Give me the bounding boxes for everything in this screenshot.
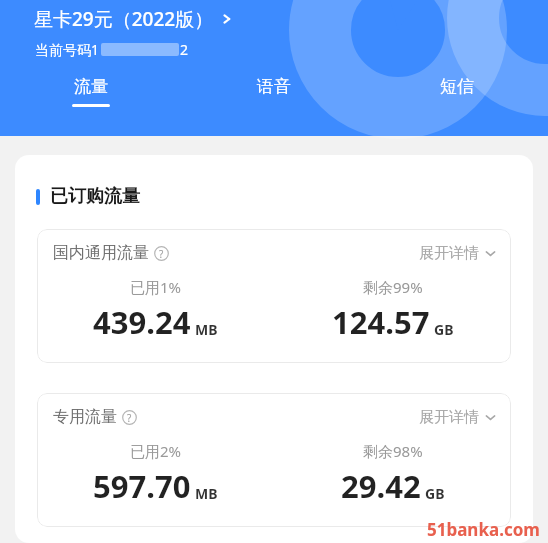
staticText: ? — [127, 411, 132, 425]
staticText: 展开详情 — [419, 408, 479, 427]
button[interactable]: 语音 — [182, 76, 365, 107]
staticText: 439.24 — [93, 301, 191, 343]
button[interactable]: 专用流量 — [37, 393, 511, 527]
staticText: 流量 — [74, 76, 108, 97]
button[interactable]: 帮助 — [154, 246, 169, 261]
button[interactable]: 展开详情 — [419, 244, 497, 263]
staticText: 597.70 — [93, 465, 191, 507]
staticText: 2 — [180, 40, 189, 59]
staticText: 51banka.com — [427, 518, 540, 541]
staticText: ? — [159, 247, 164, 261]
button[interactable]: 国内通用流量 — [37, 229, 511, 363]
button[interactable]: 短信 — [365, 76, 548, 107]
staticText: 124.57 — [332, 301, 430, 343]
staticText: 已用2% — [130, 441, 182, 461]
staticText: 剩余99% — [363, 277, 423, 297]
staticText: GB — [425, 484, 445, 503]
button[interactable]: 展开详情 — [419, 408, 497, 427]
staticText: 已用1% — [130, 277, 182, 297]
button[interactable]: 帮助 — [122, 410, 137, 425]
staticText: 已订购流量 — [50, 185, 140, 208]
staticText: 短信 — [440, 76, 474, 97]
staticText: 语音 — [257, 76, 291, 97]
staticText: MB — [195, 320, 218, 339]
staticText: 展开详情 — [419, 244, 479, 263]
button[interactable]: 流量 — [0, 76, 182, 107]
staticText: 29.42 — [341, 465, 421, 507]
staticText: 星卡29元（2022版） — [34, 6, 214, 32]
staticText: 国内通用流量 — [53, 243, 149, 263]
staticText: 当前号码1 — [35, 40, 100, 59]
staticText: MB — [195, 484, 218, 503]
staticText: 剩余98% — [363, 441, 423, 461]
button[interactable]: 星卡29元（2022版） — [34, 6, 234, 32]
staticText: 专用流量 — [53, 407, 117, 427]
staticText: GB — [434, 320, 454, 339]
